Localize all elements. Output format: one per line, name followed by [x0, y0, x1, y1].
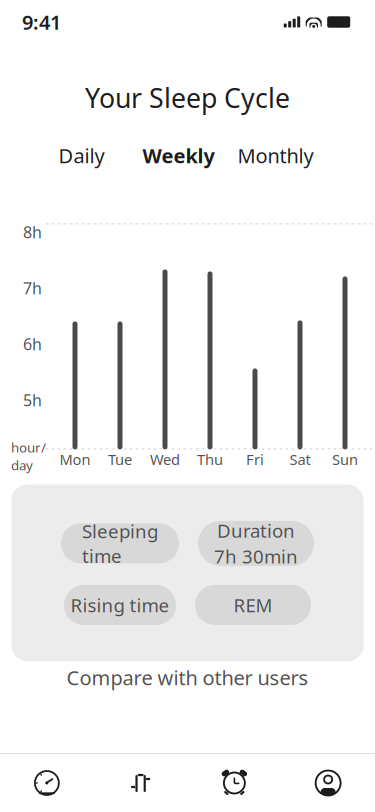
staticText: 7h 30min	[214, 544, 298, 569]
staticText: Monthly	[237, 142, 313, 169]
button[interactable]: Daily	[35, 140, 127, 170]
button[interactable]: Monthly	[229, 140, 321, 170]
button[interactable]: Sleeping time	[61, 523, 179, 563]
staticText: Fri	[246, 450, 264, 469]
button[interactable]: Weekly	[127, 140, 229, 170]
staticText: 5h	[23, 389, 42, 411]
staticText: Wed	[150, 450, 180, 469]
button[interactable]: Compare with other users	[0, 661, 375, 693]
button[interactable]: Alarm	[187, 754, 281, 812]
staticText: Compare with other users	[66, 664, 308, 691]
staticText: 9:41	[22, 9, 61, 35]
staticText: Weekly	[142, 142, 214, 169]
staticText: Rising time	[70, 592, 169, 617]
staticText: Daily	[58, 142, 104, 169]
staticText: REM	[233, 592, 272, 617]
staticText: Mon	[59, 450, 90, 469]
staticText: Sun	[332, 450, 358, 469]
staticText: Tue	[108, 450, 132, 469]
staticText: hour/day	[11, 438, 46, 474]
button[interactable]: Dashboard	[0, 754, 94, 812]
button[interactable]: Rising time	[64, 585, 176, 625]
button[interactable]: Profile	[281, 754, 375, 812]
button[interactable]: Duration	[198, 521, 314, 566]
staticText: Your Sleep Cycle	[85, 80, 290, 115]
staticText: 6h	[23, 333, 42, 355]
button[interactable]: Sleep cycle	[94, 754, 188, 812]
button[interactable]: REM	[195, 585, 311, 625]
staticText: 7h	[23, 277, 42, 299]
staticText: Sleeping time	[82, 519, 158, 568]
staticText: Sat	[289, 450, 310, 469]
staticText: Duration	[217, 518, 295, 543]
staticText: Thu	[197, 450, 223, 469]
staticText: 8h	[23, 221, 42, 243]
